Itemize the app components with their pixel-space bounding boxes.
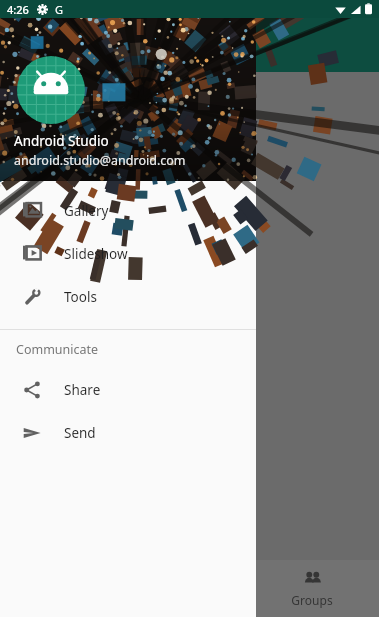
staticText: 4:26 bbox=[7, 2, 29, 17]
staticText: G bbox=[55, 2, 64, 17]
button[interactable]: Slideshow bbox=[0, 232, 256, 275]
staticText: Groups bbox=[291, 592, 333, 608]
staticText: Communicate bbox=[16, 341, 99, 358]
button[interactable]: Send bbox=[0, 411, 256, 454]
staticText: Slideshow bbox=[64, 245, 128, 263]
other: Groups bbox=[303, 569, 322, 588]
staticText: Android Studio bbox=[14, 132, 109, 150]
staticText: Gallery bbox=[64, 202, 109, 220]
button[interactable]: Gallery bbox=[0, 189, 256, 232]
button[interactable]: Tools bbox=[0, 275, 256, 318]
staticText: Tools bbox=[64, 288, 97, 306]
button[interactable]: Share bbox=[0, 368, 256, 411]
button[interactable]: Groups bbox=[257, 560, 367, 617]
staticText: Send bbox=[64, 424, 96, 442]
staticText: Share bbox=[64, 381, 101, 399]
staticText: android.studio@android.com bbox=[14, 152, 186, 169]
